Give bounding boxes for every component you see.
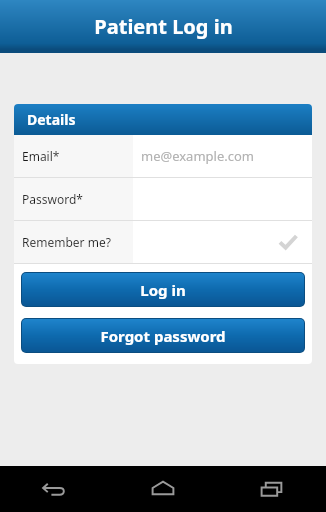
staticText: Password*	[22, 191, 83, 207]
button[interactable]: Log in	[22, 273, 304, 306]
button[interactable]: Remember me?	[14, 221, 312, 263]
staticText: Forgot password	[100, 326, 226, 346]
button[interactable]: Recents	[217, 466, 326, 512]
button[interactable]: Email*	[14, 135, 312, 177]
staticText: Patient Log in	[94, 13, 233, 40]
button[interactable]: Home	[108, 466, 217, 512]
staticText: Email*	[22, 148, 60, 164]
button[interactable]: Back	[0, 466, 108, 512]
button[interactable]: Forgot password	[22, 319, 304, 352]
staticText: Log in	[140, 280, 186, 300]
staticText: me@example.com	[141, 147, 254, 165]
staticText: Remember me?	[22, 234, 111, 250]
button[interactable]: Password*	[14, 178, 312, 220]
button[interactable]: Remember me toggle	[276, 230, 300, 254]
staticText: Details	[27, 110, 76, 129]
